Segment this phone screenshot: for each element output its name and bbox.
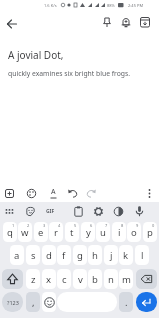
button[interactable] [64, 185, 81, 202]
staticText: e [38, 226, 44, 239]
button[interactable] [136, 292, 157, 312]
button[interactable]: A [45, 185, 62, 202]
button[interactable]: o [127, 222, 141, 242]
button[interactable] [70, 203, 87, 220]
staticText: z [31, 273, 36, 286]
button[interactable] [42, 292, 56, 312]
staticText: quickly examines six bright blue frogs. [8, 69, 131, 78]
staticText: s [31, 249, 36, 262]
button[interactable]: , [26, 292, 40, 312]
button[interactable]: v [73, 269, 87, 289]
button[interactable]: f [57, 245, 71, 265]
button[interactable] [110, 203, 127, 220]
staticText: t [70, 226, 74, 239]
staticText: 9 [136, 223, 139, 228]
staticText: l [141, 249, 144, 262]
staticText: 4 [58, 223, 61, 228]
button[interactable] [1, 185, 18, 202]
button[interactable]: w [18, 222, 32, 242]
staticText: 8 [121, 223, 124, 228]
button[interactable] [131, 203, 148, 220]
button[interactable]: t [65, 222, 79, 242]
staticText: 1.6 K/s [44, 3, 57, 8]
staticText: GIF [46, 208, 55, 215]
staticText: , [32, 296, 35, 309]
staticText: c [62, 273, 67, 286]
button[interactable]: r [49, 222, 63, 242]
staticText: p [147, 226, 153, 239]
staticText: 2:45 PM [128, 3, 144, 8]
staticText: h [92, 249, 98, 262]
button[interactable]: c [57, 269, 71, 289]
staticText: . [125, 296, 128, 309]
button[interactable]: x [42, 269, 56, 289]
button[interactable]: n [104, 269, 118, 289]
staticText: 2 [27, 223, 30, 228]
staticText: d [46, 249, 52, 262]
button[interactable] [1, 203, 18, 220]
staticText: u [100, 226, 106, 239]
staticText: g [77, 249, 83, 262]
staticText: f [62, 249, 66, 262]
button[interactable]: d [42, 245, 56, 265]
staticText: 0 [152, 223, 155, 228]
button[interactable]: h [88, 245, 102, 265]
button[interactable]: j [104, 245, 118, 265]
button[interactable] [136, 14, 154, 32]
staticText: o [131, 226, 137, 239]
button[interactable]: g [73, 245, 87, 265]
staticText: x [46, 273, 52, 286]
button[interactable]: q [3, 222, 17, 242]
staticText: A jovial Dot, [8, 48, 64, 62]
button[interactable]: s [26, 245, 40, 265]
staticText: ?123 [7, 299, 19, 306]
staticText: j [110, 249, 113, 262]
button[interactable] [57, 292, 117, 312]
button[interactable]: ?123 [2, 292, 23, 312]
button[interactable]: a [10, 245, 24, 265]
button[interactable] [136, 269, 157, 289]
staticText: b [92, 273, 98, 286]
staticText: n [108, 273, 114, 286]
button[interactable] [23, 185, 40, 202]
button[interactable]: . [119, 292, 133, 312]
button[interactable]: l [135, 245, 149, 265]
staticText: a [14, 249, 20, 262]
staticText: 5 [74, 223, 77, 228]
button[interactable]: u [96, 222, 110, 242]
staticText: m [122, 273, 131, 286]
staticText: y [86, 226, 91, 239]
staticText: i [118, 226, 121, 239]
staticText: 3 [43, 223, 46, 228]
button[interactable]: k [119, 245, 133, 265]
staticText: w [21, 226, 29, 239]
staticText: A [51, 187, 56, 197]
button[interactable] [90, 203, 107, 220]
staticText: 7 [105, 223, 108, 228]
staticText: r [54, 226, 58, 239]
staticText: 1 [12, 223, 15, 228]
button[interactable]: b [88, 269, 102, 289]
button[interactable]: z [26, 269, 40, 289]
button[interactable] [141, 185, 158, 202]
button[interactable]: p [143, 222, 157, 242]
button[interactable] [2, 14, 22, 34]
staticText: 88% [107, 3, 115, 8]
staticText: k [123, 249, 129, 262]
staticText: v [78, 273, 83, 286]
button[interactable] [98, 14, 116, 32]
button[interactable]: i [112, 222, 126, 242]
staticText: 6 [90, 223, 93, 228]
button[interactable] [22, 203, 39, 220]
staticText: q [7, 226, 13, 239]
button[interactable]: m [119, 269, 133, 289]
button[interactable] [83, 185, 100, 202]
button[interactable]: e [34, 222, 48, 242]
button[interactable] [117, 14, 135, 32]
button[interactable] [2, 269, 23, 289]
button[interactable]: y [81, 222, 95, 242]
button[interactable]: GIF [42, 203, 59, 220]
